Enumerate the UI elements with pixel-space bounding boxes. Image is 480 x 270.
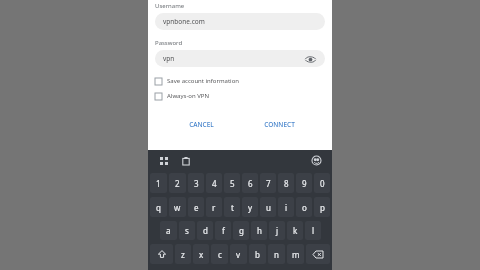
staticText: e [194, 202, 199, 213]
button[interactable]: p [314, 197, 330, 217]
button[interactable]: Clipboard [178, 153, 193, 168]
button[interactable]: c [211, 244, 228, 264]
staticText: vpn [163, 54, 175, 63]
staticText: j [276, 225, 279, 236]
staticText: r [212, 202, 216, 213]
button[interactable]: n [268, 244, 285, 264]
button[interactable]: 0 [314, 173, 330, 193]
staticText: 4 [212, 178, 217, 189]
button[interactable]: CONNECT [246, 114, 312, 134]
button[interactable]: a [160, 221, 177, 240]
button[interactable]: Keyboard settings [309, 153, 324, 168]
button[interactable]: 8 [278, 173, 294, 193]
staticText: vpnbone.com [163, 17, 205, 26]
button[interactable]: 1 [150, 173, 167, 193]
button[interactable]: 7 [260, 173, 276, 193]
staticText: h [257, 225, 262, 236]
button[interactable]: vpnbone.com [155, 13, 325, 30]
button[interactable]: w [169, 197, 186, 217]
button[interactable]: d [197, 221, 213, 240]
button[interactable]: Always-on VPN [155, 90, 325, 102]
staticText: l [312, 225, 315, 236]
button[interactable]: t [224, 197, 240, 217]
staticText: Password [155, 39, 183, 47]
button[interactable]: 4 [206, 173, 222, 193]
button[interactable]: m [287, 244, 304, 264]
staticText: n [274, 249, 279, 260]
button[interactable]: Shift [150, 244, 173, 264]
button[interactable]: e [188, 197, 204, 217]
button[interactable]: z [175, 244, 191, 264]
button[interactable]: 2 [169, 173, 186, 193]
button[interactable]: j [269, 221, 285, 240]
staticText: 7 [266, 178, 271, 189]
staticText: v [236, 249, 241, 260]
staticText: 2 [175, 178, 180, 189]
button[interactable]: l [305, 221, 321, 240]
staticText: 9 [302, 178, 307, 189]
button[interactable]: 5 [224, 173, 240, 193]
button[interactable]: o [296, 197, 312, 217]
staticText: i [285, 202, 288, 213]
button[interactable]: h [251, 221, 267, 240]
button[interactable]: Apps [156, 153, 171, 168]
staticText: p [320, 202, 325, 213]
button[interactable]: x [193, 244, 209, 264]
staticText: 5 [230, 178, 235, 189]
staticText: Save account information [167, 77, 240, 85]
staticText: m [292, 249, 300, 260]
button[interactable]: y [242, 197, 258, 217]
staticText: b [255, 249, 260, 260]
staticText: 0 [320, 178, 325, 189]
button[interactable]: Show password [303, 52, 317, 66]
button[interactable]: vpn [155, 50, 325, 67]
button[interactable]: 3 [188, 173, 204, 193]
staticText: y [248, 202, 253, 213]
staticText: d [203, 225, 208, 236]
staticText: q [156, 202, 161, 213]
button[interactable]: i [278, 197, 294, 217]
staticText: z [181, 249, 185, 260]
button[interactable]: v [230, 244, 247, 264]
button[interactable]: k [287, 221, 303, 240]
button[interactable]: s [179, 221, 195, 240]
staticText: o [302, 202, 307, 213]
button[interactable]: q [150, 197, 167, 217]
staticText: 1 [156, 178, 161, 189]
staticText: 8 [284, 178, 289, 189]
staticText: g [239, 225, 244, 236]
button[interactable]: u [260, 197, 276, 217]
staticText: Username [155, 2, 185, 10]
button[interactable]: 9 [296, 173, 312, 193]
staticText: t [231, 202, 234, 213]
staticText: c [218, 249, 222, 260]
staticText: w [174, 202, 181, 213]
staticText: 6 [248, 178, 253, 189]
button[interactable]: CANCEL [168, 114, 234, 134]
staticText: k [293, 225, 298, 236]
staticText: 3 [194, 178, 199, 189]
button[interactable]: b [249, 244, 266, 264]
button[interactable]: Save account information [155, 75, 325, 87]
staticText: u [266, 202, 271, 213]
staticText: Always-on VPN [167, 92, 210, 100]
button[interactable]: f [215, 221, 231, 240]
staticText: CANCEL [189, 120, 214, 129]
button[interactable]: r [206, 197, 222, 217]
staticText: f [222, 225, 225, 236]
button[interactable]: g [233, 221, 249, 240]
staticText: s [185, 225, 189, 236]
button[interactable]: Backspace [306, 244, 330, 264]
staticText: x [199, 249, 204, 260]
button[interactable]: 6 [242, 173, 258, 193]
staticText: CONNECT [264, 120, 295, 129]
staticText: a [166, 225, 171, 236]
